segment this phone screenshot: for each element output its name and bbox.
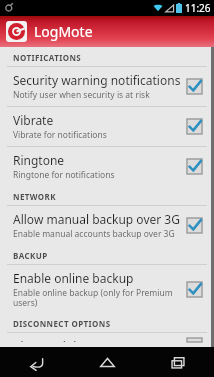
staticText: BACKUP <box>13 250 48 261</box>
staticText: Enable online backup (only for Premium u… <box>13 287 181 308</box>
button[interactable]: Enable online backup <box>0 265 214 313</box>
staticText: LogMote <box>34 22 93 41</box>
staticText: Ringtone for notifications <box>13 169 115 181</box>
staticText: 11:26 <box>185 1 211 15</box>
staticText: Notify user when security is at risk <box>13 89 150 101</box>
staticText: Allow manual backup over 3G <box>13 211 180 227</box>
button[interactable]: Security warning notifications <box>0 67 214 106</box>
button[interactable]: Vibrate <box>0 107 214 146</box>
staticText: Vibrate <box>13 112 54 128</box>
button[interactable]: Close web browser <box>0 333 214 347</box>
staticText: Close web browser <box>13 338 120 342</box>
staticText: Enable manual accounts backup over 3G <box>13 228 175 240</box>
staticText: Vibrate for notifications <box>13 129 107 141</box>
button[interactable]: Ringtone <box>0 147 214 186</box>
staticText: Enable online backup <box>13 270 134 286</box>
staticText: Security warning notifications <box>13 72 181 88</box>
staticText: DISCONNECT OPTIONS <box>13 318 111 329</box>
staticText: NETWORK <box>13 191 56 202</box>
button[interactable]: Allow manual backup over 3G <box>0 206 214 245</box>
button[interactable]: Back <box>0 347 72 377</box>
button[interactable]: Recent apps <box>143 347 214 377</box>
staticText: NOTIFICATIONS <box>13 52 82 63</box>
button[interactable]: Home <box>72 347 143 377</box>
staticText: Ringtone <box>13 152 65 168</box>
